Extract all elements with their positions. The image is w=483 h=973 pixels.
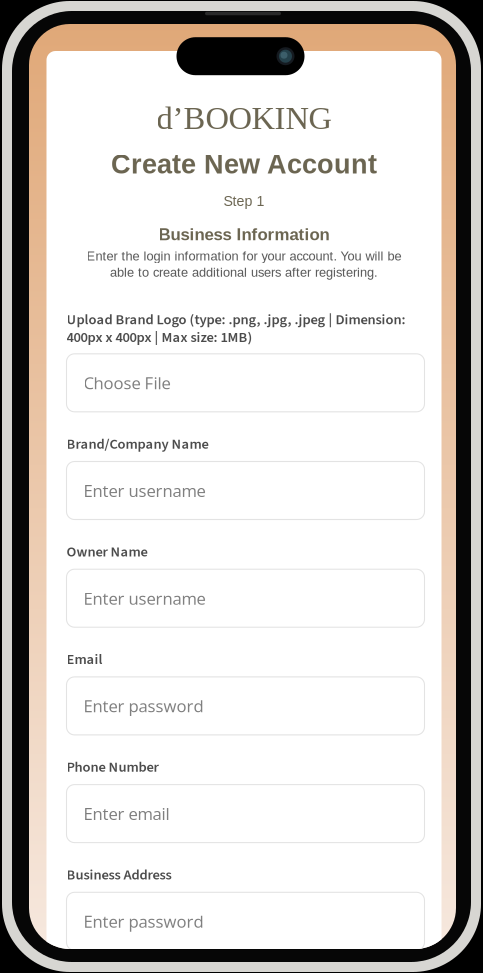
staticText: Step 1 <box>223 193 264 209</box>
button[interactable]: Enter username <box>66 461 424 519</box>
staticText: Enter username <box>83 587 205 610</box>
staticText: Owner Name <box>66 541 147 562</box>
button[interactable]: Enter username <box>66 569 424 627</box>
button[interactable]: Enter password <box>66 892 424 950</box>
staticText: able to create additional users after re… <box>110 265 378 279</box>
button[interactable]: Enter email <box>66 785 424 843</box>
staticText: Enter username <box>83 479 205 502</box>
staticText: Upload Brand Logo (type: .png, .jpg, .jp… <box>66 309 405 330</box>
button[interactable]: Choose File <box>66 354 424 412</box>
staticText: Phone Number <box>66 757 158 778</box>
staticText: Create New Account <box>111 149 377 179</box>
staticText: Business Information <box>158 225 329 244</box>
staticText: Business Address <box>66 865 171 885</box>
staticText: Choose File <box>83 371 170 394</box>
button[interactable]: Enter password <box>66 677 424 735</box>
staticText: Enter the login information for your acc… <box>86 249 401 263</box>
staticText: d’BOOKING <box>156 100 331 136</box>
staticText: Enter email <box>83 802 169 825</box>
staticText: Enter password <box>83 695 203 717</box>
staticText: Brand/Company Name <box>66 434 208 454</box>
staticText: Email <box>66 649 102 670</box>
staticText: Enter password <box>83 910 203 933</box>
staticText: 400px x 400px | Max size: 1MB) <box>66 327 252 348</box>
